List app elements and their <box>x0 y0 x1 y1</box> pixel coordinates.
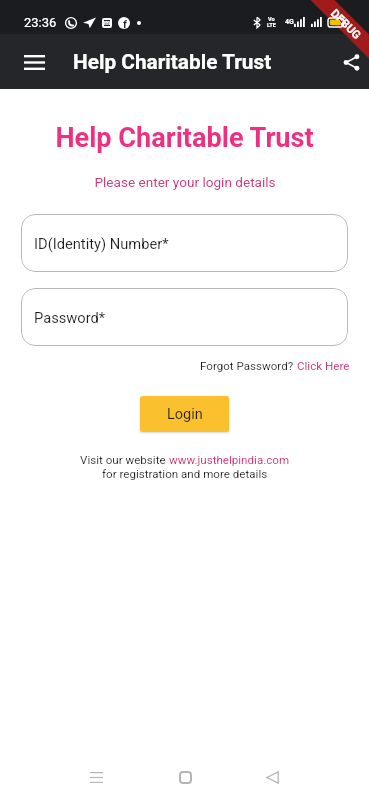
button[interactable]: Click Here <box>297 359 350 373</box>
staticText: Help Charitable Trust <box>55 122 314 154</box>
button[interactable]: Recents <box>78 759 114 795</box>
staticText: LTE <box>267 22 276 28</box>
staticText: for registration and more details <box>102 467 268 481</box>
staticText: Forgot Password? <box>200 359 297 373</box>
staticText: f <box>123 18 127 30</box>
staticText: DEBUG <box>329 6 364 42</box>
button[interactable]: Login <box>140 396 229 432</box>
staticText: www.justhelpindia.com <box>169 453 290 467</box>
button[interactable]: Share <box>331 42 369 82</box>
staticText: ID(Identity) Number* <box>34 235 169 252</box>
staticText: Please enter your login details <box>94 174 276 190</box>
button[interactable]: www.justhelpindia.com <box>169 453 290 467</box>
button[interactable]: Back <box>254 759 290 795</box>
staticText: Click Here <box>297 359 350 373</box>
staticText: Visit our website <box>80 453 169 467</box>
staticText: Password* <box>34 309 106 326</box>
staticText: m <box>104 19 111 27</box>
staticText: Help Charitable Trust <box>73 50 272 74</box>
button[interactable]: Home <box>167 759 203 795</box>
button[interactable]: Password* <box>21 288 348 346</box>
staticText: 23:36 <box>24 15 57 30</box>
staticText: Login <box>167 406 203 423</box>
button[interactable]: Menu <box>14 42 54 82</box>
staticText: 4G <box>285 18 294 26</box>
staticText: Vo <box>268 16 275 22</box>
button[interactable]: ID(Identity) Number* <box>21 214 348 272</box>
